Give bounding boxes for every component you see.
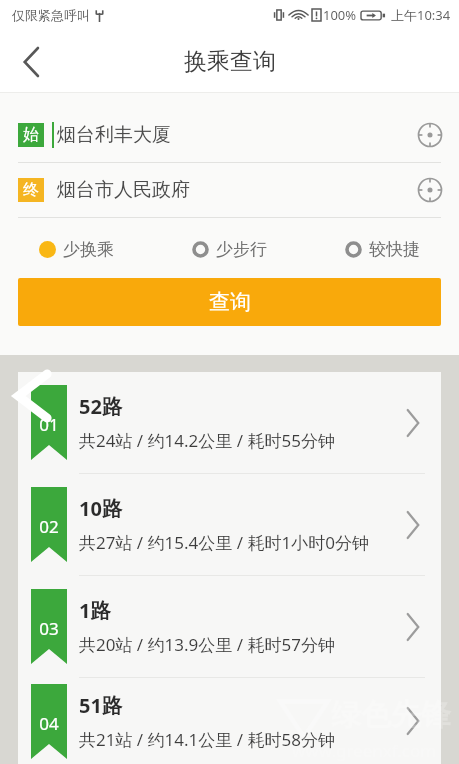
- button[interactable]: Back: [8, 39, 54, 85]
- staticText: 10路: [79, 495, 122, 522]
- staticText: 100%: [323, 6, 357, 24]
- button[interactable]: Details: [391, 401, 435, 445]
- staticText: 共24站 / 约14.2公里 / 耗时55分钟: [79, 429, 335, 452]
- staticText: 少换乘: [63, 239, 114, 260]
- button[interactable]: 终: [0, 163, 459, 217]
- staticText: 烟台利丰大厦: [57, 123, 171, 147]
- staticText: 04: [39, 712, 59, 735]
- staticText: 少步行: [216, 239, 267, 260]
- staticText: 共27站 / 约15.4公里 / 耗时1小时0分钟: [79, 531, 369, 554]
- button[interactable]: Details: [391, 605, 435, 649]
- staticText: 51路: [79, 692, 122, 719]
- staticText: 02: [39, 515, 59, 538]
- staticText: 较快捷: [369, 239, 420, 260]
- staticText: 共20站 / 约13.9公里 / 耗时57分钟: [79, 633, 335, 656]
- button[interactable]: 较快捷: [306, 231, 459, 267]
- button[interactable]: 查询: [18, 278, 441, 326]
- button[interactable]: 少换乘: [0, 231, 153, 267]
- button[interactable]: 少步行: [153, 231, 306, 267]
- staticText: 绿色先锋: [331, 696, 451, 734]
- button[interactable]: Details: [391, 699, 435, 743]
- button[interactable]: Locate: [407, 112, 453, 158]
- staticText: 共21站 / 约14.1公里 / 耗时58分钟: [79, 728, 335, 751]
- button[interactable]: 01: [18, 372, 441, 473]
- button[interactable]: 02: [18, 474, 441, 575]
- staticText: 查询: [209, 289, 251, 315]
- staticText: 始: [23, 125, 39, 145]
- button[interactable]: 始: [0, 108, 459, 162]
- button[interactable]: Details: [391, 503, 435, 547]
- staticText: 终: [23, 180, 39, 200]
- staticText: 52路: [79, 393, 122, 420]
- staticText: 01: [39, 413, 59, 436]
- staticText: 烟台市人民政府: [57, 178, 190, 202]
- button[interactable]: 03: [18, 576, 441, 677]
- staticText: 1路: [79, 597, 111, 624]
- staticText: 换乘查询: [184, 47, 276, 76]
- button[interactable]: Locate: [407, 167, 453, 213]
- button[interactable]: 04: [18, 678, 441, 764]
- staticText: 上午10:34: [391, 6, 451, 24]
- staticText: 03: [39, 617, 59, 640]
- staticText: 仅限紧急呼叫: [12, 7, 90, 23]
- staticText: www.greenxf.com: [292, 739, 437, 762]
